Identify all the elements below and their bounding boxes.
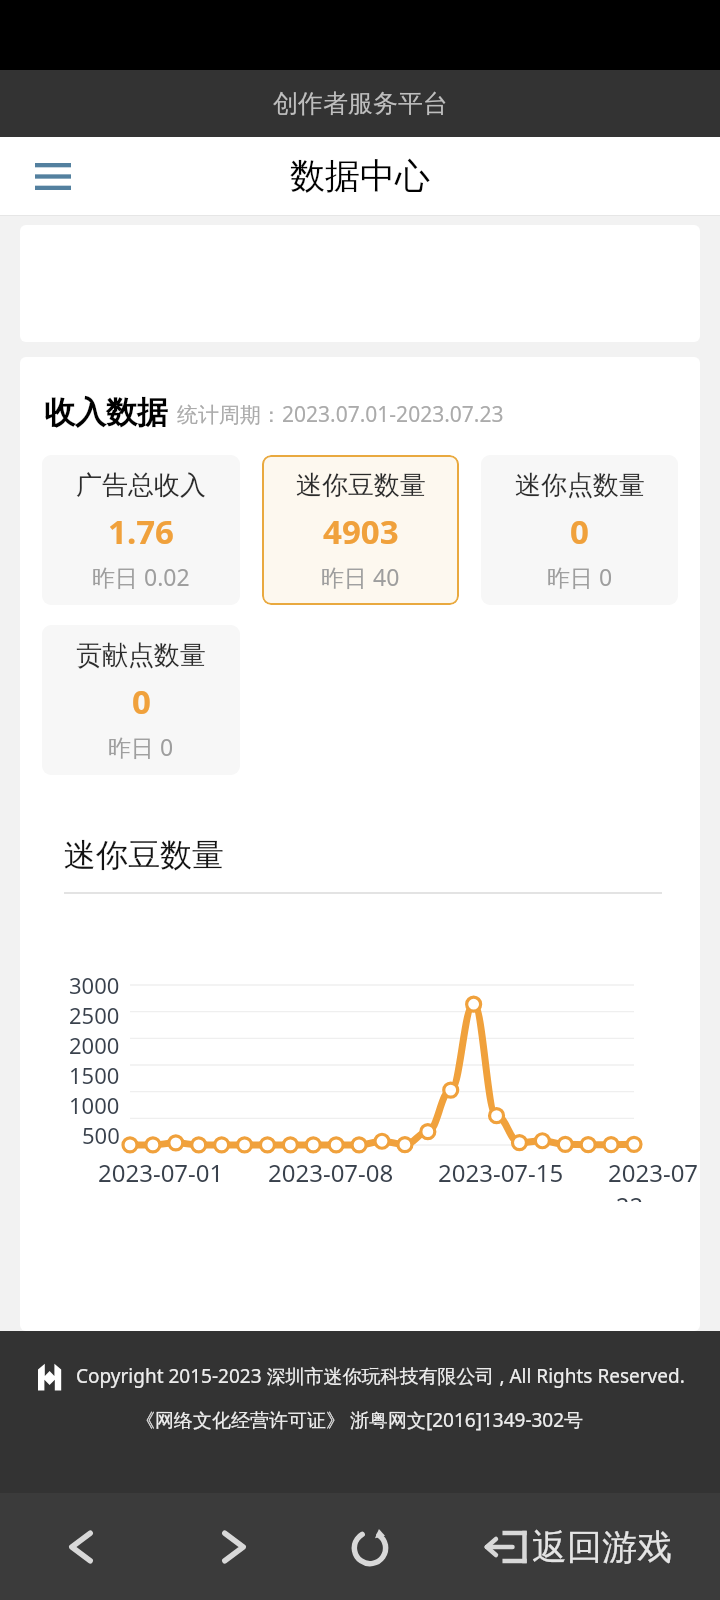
staticText: 1.76 (108, 509, 174, 554)
staticText: 4903 (323, 509, 399, 554)
button[interactable]: 迷你点数量 (481, 455, 678, 605)
staticText: 贡献点数量 (76, 639, 206, 672)
staticText: 2023-07-08 (268, 1156, 394, 1189)
staticText: 2023-07-01 (98, 1156, 224, 1189)
staticText: 昨日 0 (547, 561, 613, 592)
staticText: 迷你豆数量 (64, 835, 224, 875)
staticText: 2023-07-15 (438, 1156, 564, 1189)
staticText: 迷你点数量 (515, 469, 645, 502)
staticText: 2023-07-22 (608, 1156, 700, 1202)
staticText: 创作者服务平台 (273, 88, 448, 119)
staticText: 迷你豆数量 (296, 469, 426, 502)
button[interactable]: Back (0, 1493, 162, 1600)
button[interactable]: Forward (162, 1493, 305, 1600)
staticText: 1500 (69, 1060, 120, 1090)
staticText: 统计周期：2023.07.01-2023.07.23 (177, 400, 504, 429)
staticText: 3000 (69, 970, 120, 1000)
staticText: 500 (82, 1120, 120, 1150)
button[interactable]: 广告总收入 (42, 455, 240, 605)
staticText: 0 (570, 509, 589, 554)
button[interactable]: Refresh (305, 1493, 435, 1600)
staticText: 0 (132, 679, 151, 724)
staticText: 2500 (69, 1000, 120, 1030)
staticText: 返回游戏 (532, 1525, 672, 1569)
staticText: 《网络文化经营许可证》 浙粤网文[2016]1349-302号 (136, 1407, 584, 1433)
staticText: 收入数据 (44, 393, 168, 432)
staticText: 昨日 40 (321, 561, 400, 592)
staticText: Copyright 2015-2023 深圳市迷你玩科技有限公司 , All R… (76, 1363, 685, 1389)
button[interactable]: 贡献点数量 (42, 625, 240, 775)
staticText: 1000 (69, 1090, 120, 1120)
staticText: 广告总收入 (76, 469, 206, 502)
staticText: 2000 (69, 1030, 120, 1060)
staticText: 数据中心 (290, 154, 430, 198)
staticText: 昨日 0 (108, 731, 174, 762)
button[interactable]: Menu (20, 143, 86, 209)
button[interactable]: 返回游戏 (435, 1493, 720, 1600)
button[interactable]: 迷你豆数量 (262, 455, 459, 605)
staticText: 昨日 0.02 (92, 561, 190, 592)
